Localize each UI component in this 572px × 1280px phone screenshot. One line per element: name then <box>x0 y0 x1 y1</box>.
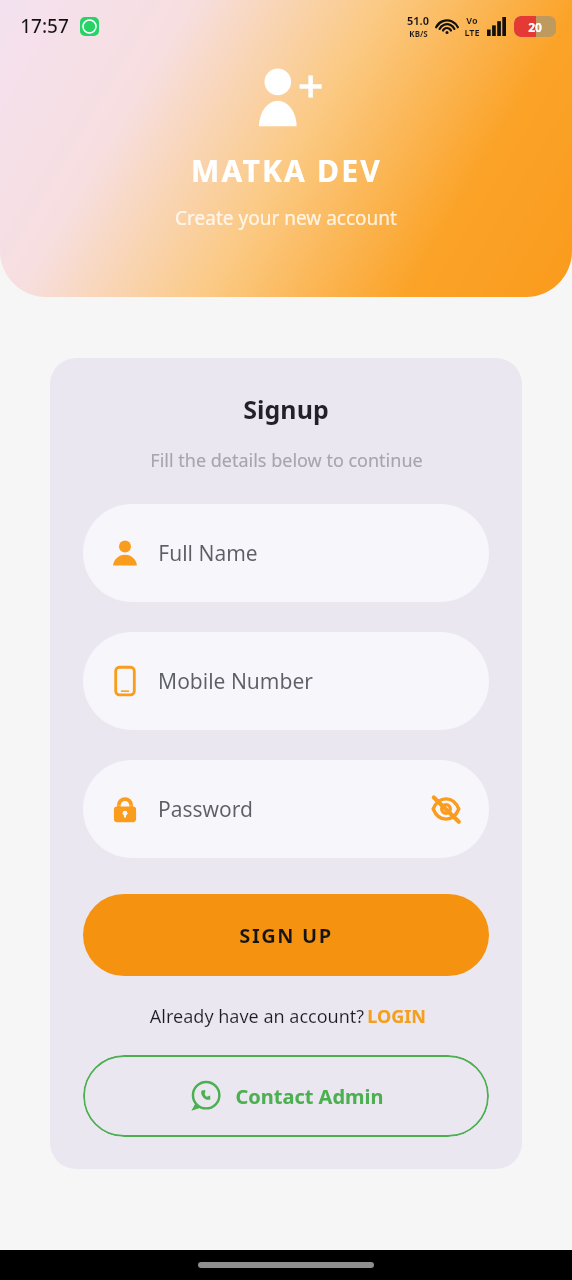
staticText: LTE <box>464 26 480 38</box>
staticText: Fill the details below to continue <box>150 448 423 473</box>
staticText: 17:57 <box>20 13 69 39</box>
staticText: 51.0 <box>407 13 429 28</box>
staticText: MATKA DEV <box>191 150 382 191</box>
staticText: Password <box>158 795 253 824</box>
staticText: Create your new account <box>175 205 397 231</box>
staticText: Contact Admin <box>235 1083 384 1110</box>
staticText: 20 <box>528 19 542 35</box>
staticText: SIGN UP <box>239 922 333 949</box>
staticText: Full Name <box>158 539 258 568</box>
button[interactable]: Password <box>83 760 489 858</box>
staticText: KB/S <box>409 28 428 39</box>
button[interactable]: Full Name <box>83 504 489 602</box>
button[interactable]: Contact Admin <box>83 1055 489 1137</box>
staticText: Mobile Number <box>158 667 313 696</box>
button[interactable]: LOGIN <box>367 1004 426 1029</box>
staticText: Vo <box>466 14 478 26</box>
staticText: Already have an account? <box>147 1004 367 1029</box>
button[interactable]: SIGN UP <box>83 894 489 976</box>
button[interactable]: Toggle password visibility <box>429 792 463 826</box>
staticText: Signup <box>243 392 329 426</box>
staticText: LOGIN <box>367 1004 426 1029</box>
button[interactable]: Mobile Number <box>83 632 489 730</box>
